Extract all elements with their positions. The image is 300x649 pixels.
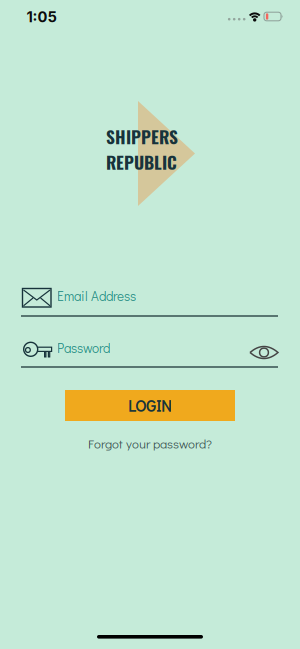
staticText: Forgot your password?	[88, 435, 212, 452]
button[interactable]: Email Address	[21, 283, 278, 317]
staticText: Password	[57, 339, 110, 357]
staticText: LOGIN	[128, 395, 172, 416]
staticText: Email Address	[57, 287, 136, 304]
staticText: 1:05	[26, 8, 56, 26]
button[interactable]: Password	[21, 335, 278, 367]
button[interactable]: Forgot your password?	[88, 435, 212, 452]
staticText: REPUBLIC	[106, 149, 177, 175]
button[interactable]: LOGIN	[65, 390, 235, 421]
button[interactable]: Show password	[249, 344, 279, 361]
staticText: SHIPPERS	[106, 124, 178, 149]
